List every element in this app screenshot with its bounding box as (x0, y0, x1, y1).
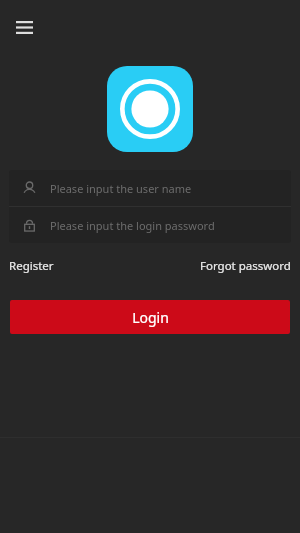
button[interactable]: Menu (9, 12, 39, 42)
staticText: Please input the user name (50, 181, 192, 196)
staticText: Forgot password (200, 258, 291, 274)
button[interactable]: Forgot password (200, 258, 291, 274)
staticText: Login (132, 308, 169, 327)
staticText: Register (9, 258, 54, 274)
button[interactable]: Register (9, 258, 54, 274)
staticText: Please input the login password (50, 218, 215, 233)
button[interactable]: Please input the login password (9, 207, 291, 243)
button[interactable]: Login (10, 300, 290, 334)
button[interactable]: Please input the user name (9, 170, 291, 206)
